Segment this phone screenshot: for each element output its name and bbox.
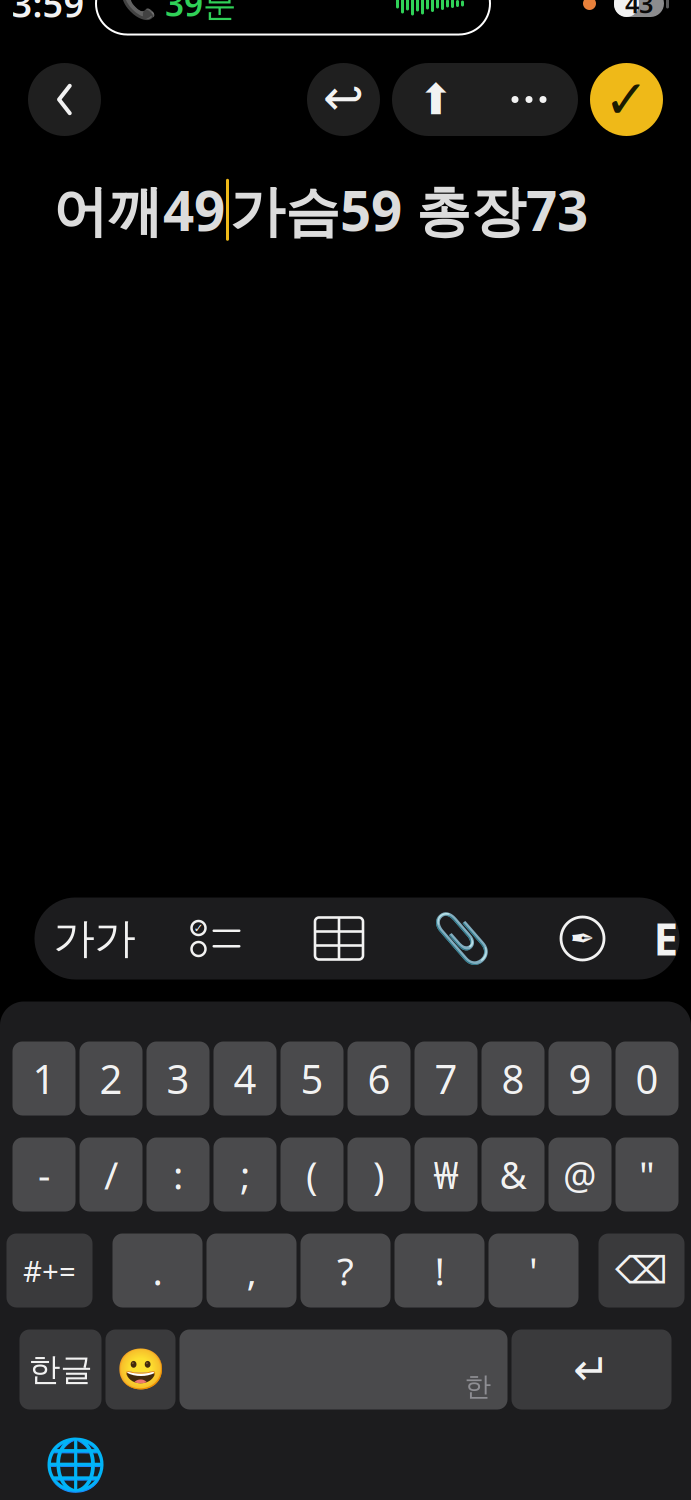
staticText: ↵ [573,1344,610,1394]
staticText: " [639,1149,655,1200]
staticText: 39분 [165,0,236,26]
button[interactable]: 7 [414,1041,477,1115]
staticText: 가가 [53,913,135,964]
button[interactable]: ) [347,1137,410,1211]
button[interactable]: 6 [347,1041,410,1115]
button[interactable]: 9 [548,1041,611,1115]
staticText: 한글 [28,1350,92,1389]
button[interactable]: 8 [481,1041,544,1115]
button[interactable]: - [12,1137,75,1211]
button[interactable]: Text formatting [34,897,154,979]
button[interactable]: . [112,1233,202,1307]
staticText: 📎 [432,911,492,966]
staticText: 🌐 [43,1436,106,1493]
button[interactable]: 4 [213,1041,276,1115]
button[interactable]: & [481,1137,544,1211]
staticText: 1 [32,1052,55,1105]
staticText: ) [373,1149,385,1200]
staticText: 3 [166,1052,189,1105]
staticText: 43 [625,0,653,20]
button[interactable]: ( [280,1137,343,1211]
staticText: E [653,909,678,968]
staticText: @ [563,1150,597,1199]
staticText: : [173,1149,183,1200]
staticText: ⬆ [418,75,454,124]
staticText: , [246,1245,256,1296]
button[interactable]: @ [548,1137,611,1211]
button[interactable]: Checklist [154,897,277,979]
staticText: 어깨49 [53,173,225,246]
button[interactable]: ; [213,1137,276,1211]
staticText: 📞 [120,0,157,20]
staticText: ₩ [433,1150,458,1199]
button[interactable]: Done [590,63,663,136]
button[interactable]: Attach [400,897,523,979]
button[interactable]: " [615,1137,678,1211]
button[interactable]: Change keyboard [40,1429,110,1499]
button[interactable]: , [206,1233,296,1307]
staticText: #+= [23,1251,76,1290]
staticText: 6 [367,1052,390,1105]
staticText: 5 [300,1052,323,1105]
button[interactable]: Share [392,63,480,136]
staticText: 0 [635,1052,658,1105]
button[interactable]: Space [179,1329,507,1409]
staticText: 한 [464,1370,491,1403]
staticText: ↩ [323,69,364,125]
button[interactable]: ' [488,1233,578,1307]
button[interactable]: 1 [12,1041,75,1115]
button[interactable]: 3 [146,1041,209,1115]
button[interactable]: More [480,63,578,136]
button[interactable]: Markup [523,897,641,979]
staticText: 8 [501,1052,524,1105]
staticText: ✓ [604,69,649,130]
staticText: . [152,1245,162,1296]
staticText: ⌫ [615,1249,668,1292]
button[interactable]: ! [394,1233,484,1307]
button[interactable]: ⌫ [598,1233,684,1307]
button[interactable]: 0 [615,1041,678,1115]
staticText: 가슴59 총장73 [230,173,588,246]
button[interactable]: / [79,1137,142,1211]
staticText: 9 [568,1052,591,1105]
staticText: / [104,1149,118,1200]
button[interactable]: Back [28,63,101,136]
button[interactable]: Undo [307,63,380,136]
button[interactable]: More tools [653,897,679,979]
staticText: - [38,1149,50,1200]
staticText: 2 [99,1052,122,1105]
staticText: ; [240,1149,250,1200]
staticText: ' [529,1245,538,1296]
staticText: 4 [233,1052,256,1105]
button[interactable]: ? [300,1233,390,1307]
staticText: 7 [434,1052,457,1105]
button[interactable]: 한글 [19,1329,101,1409]
staticText: ( [306,1149,318,1200]
button[interactable]: ↵ [511,1329,671,1409]
button[interactable]: 5 [280,1041,343,1115]
button[interactable]: 😀 [105,1329,175,1409]
staticText: 3:59 [11,0,84,27]
staticText: 😀 [115,1347,165,1392]
staticText: ? [337,1245,354,1296]
button[interactable]: : [146,1137,209,1211]
staticText: ✓ [193,921,203,935]
button[interactable]: #+= [6,1233,92,1307]
staticText: ! [434,1245,444,1296]
button[interactable]: ₩ [414,1137,477,1211]
button[interactable]: 2 [79,1041,142,1115]
staticText: ✒ [570,922,595,955]
button[interactable]: Table [277,897,400,979]
staticText: & [499,1150,526,1199]
